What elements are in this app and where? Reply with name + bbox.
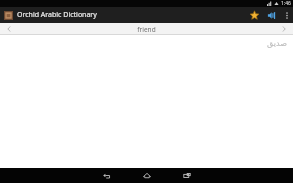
button[interactable]: Recent apps — [178, 168, 196, 183]
button[interactable]: Next entry — [275, 23, 293, 35]
staticText: friend — [137, 25, 156, 34]
staticText: Orchid Arabic Dictionary — [17, 10, 97, 20]
staticText: صديق — [267, 39, 287, 48]
button[interactable]: Previous entry — [0, 23, 18, 35]
button[interactable]: Pronounce — [263, 7, 280, 23]
button[interactable]: More options — [280, 7, 293, 23]
button[interactable]: Back — [98, 168, 116, 183]
button[interactable]: Home — [138, 168, 156, 183]
button[interactable]: Orchid Arabic Dictionary — [4, 10, 97, 20]
button[interactable]: Add to favourites — [246, 7, 263, 23]
staticText: 1:46 — [281, 0, 291, 7]
